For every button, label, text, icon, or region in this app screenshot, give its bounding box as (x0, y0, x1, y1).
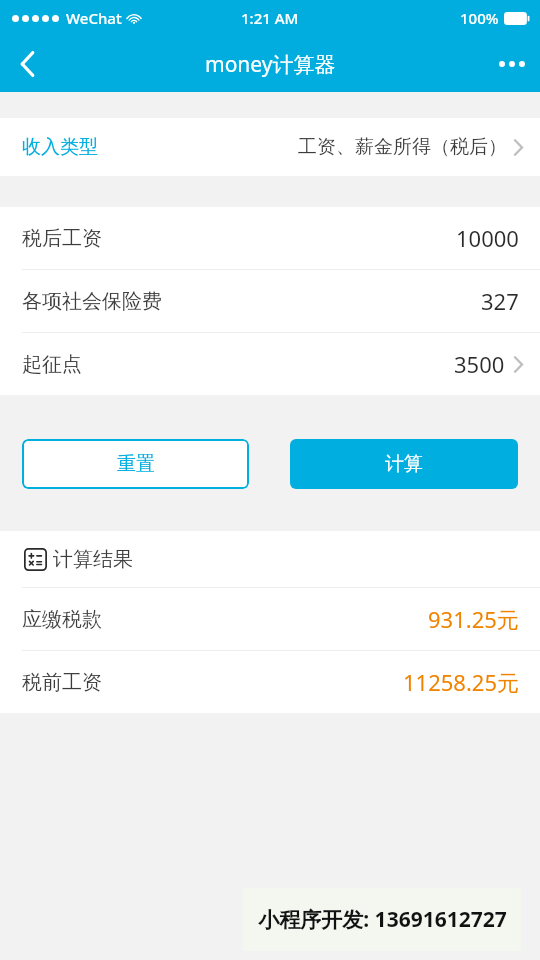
staticText: money计算器 (205, 50, 336, 79)
staticText: 各项社会保险费 (22, 289, 162, 314)
button[interactable]: 计算 (290, 439, 518, 489)
button[interactable]: 重置 (22, 439, 249, 489)
button[interactable]: 收入类型 (0, 118, 540, 176)
staticText: WeChat (66, 8, 122, 28)
button[interactable]: 应缴税款 (0, 588, 540, 650)
staticText: 3500 (454, 349, 505, 379)
button[interactable]: 起征点 (0, 333, 540, 395)
staticText: 工资、薪金所得（税后） (298, 135, 507, 159)
staticText: 327 (481, 286, 519, 316)
staticText: 计算 (385, 452, 423, 476)
staticText: 小程序开发: 13691612727 (258, 905, 507, 934)
staticText: 应缴税款 (22, 607, 102, 632)
staticText: 100% (460, 8, 499, 28)
staticText: 收入类型 (22, 135, 98, 159)
button[interactable]: More options (484, 36, 540, 92)
button[interactable]: 小程序开发: 13691612727 (243, 888, 521, 951)
staticText: 11258.25元 (403, 667, 519, 697)
staticText: 1:21 AM (241, 8, 299, 28)
staticText: 931.25元 (428, 604, 519, 634)
button[interactable]: 税前工资 (0, 651, 540, 713)
button[interactable]: 税后工资 (0, 207, 540, 269)
staticText: 税后工资 (22, 226, 102, 251)
staticText: 计算结果 (53, 547, 133, 572)
button[interactable]: 各项社会保险费 (0, 270, 540, 332)
button[interactable]: Back (0, 36, 56, 92)
staticText: 10000 (456, 223, 519, 253)
staticText: 重置 (117, 452, 155, 476)
staticText: 税前工资 (22, 670, 102, 695)
staticText: 起征点 (22, 352, 82, 377)
